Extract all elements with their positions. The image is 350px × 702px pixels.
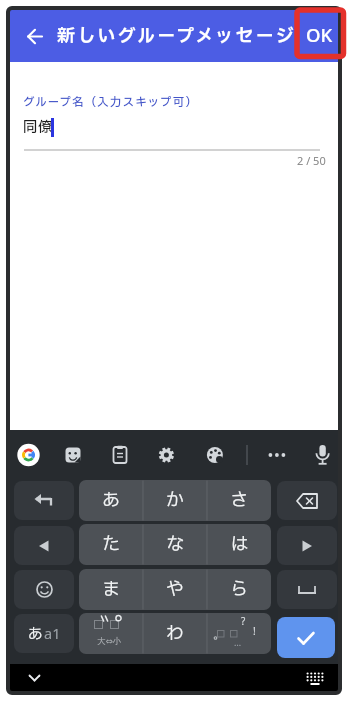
staticText: グループ名（入力スキップ可） xyxy=(23,94,198,111)
button[interactable] xyxy=(277,481,337,520)
staticText: ? xyxy=(241,614,246,628)
staticText: 同僚 xyxy=(23,117,54,139)
staticText: … xyxy=(234,636,242,648)
staticText: あ xyxy=(28,623,44,645)
staticText: あ xyxy=(102,487,120,514)
staticText: な xyxy=(166,531,184,558)
button[interactable] xyxy=(18,19,52,53)
staticText: わ xyxy=(166,620,184,647)
button[interactable]: な xyxy=(143,524,207,565)
button[interactable]: あ xyxy=(14,614,74,653)
staticText: か xyxy=(166,487,184,514)
staticText: 2 / 50 xyxy=(297,153,326,168)
button[interactable]: わ xyxy=(143,613,207,654)
staticText: a1 xyxy=(44,623,61,643)
button[interactable] xyxy=(14,526,74,565)
staticText: 大⇔小 xyxy=(97,636,122,647)
button[interactable] xyxy=(197,433,233,477)
staticText: や xyxy=(166,576,184,603)
button[interactable] xyxy=(277,526,337,565)
button[interactable]: あ xyxy=(79,480,143,521)
button[interactable] xyxy=(18,664,50,691)
staticText: ! xyxy=(253,624,256,638)
button[interactable] xyxy=(102,433,138,477)
button[interactable] xyxy=(305,433,341,477)
button[interactable] xyxy=(55,433,91,477)
button[interactable]: は xyxy=(207,524,271,565)
button[interactable] xyxy=(277,570,337,609)
staticText: 新しいグループメッセージ xyxy=(57,23,297,50)
button[interactable]: ま xyxy=(79,569,143,610)
button[interactable]: か xyxy=(143,480,207,521)
staticText: OK xyxy=(306,22,333,47)
button[interactable]: ? xyxy=(207,613,271,654)
button[interactable]: OK xyxy=(302,21,336,47)
staticText: ま xyxy=(102,576,120,603)
button[interactable]: や xyxy=(143,569,207,610)
button[interactable] xyxy=(259,433,295,477)
button[interactable]: さ xyxy=(207,480,271,521)
button[interactable] xyxy=(148,433,184,477)
staticText: さ xyxy=(230,487,248,514)
button[interactable] xyxy=(14,481,74,520)
button[interactable] xyxy=(277,617,335,658)
button[interactable]: 大⇔小 xyxy=(79,613,143,654)
staticText: は xyxy=(230,531,248,558)
button[interactable]: ら xyxy=(207,569,271,610)
button[interactable] xyxy=(11,433,47,477)
staticText: た xyxy=(102,531,120,558)
button[interactable]: た xyxy=(79,524,143,565)
button[interactable] xyxy=(299,666,331,691)
staticText: ら xyxy=(230,576,248,603)
button[interactable] xyxy=(14,570,74,609)
